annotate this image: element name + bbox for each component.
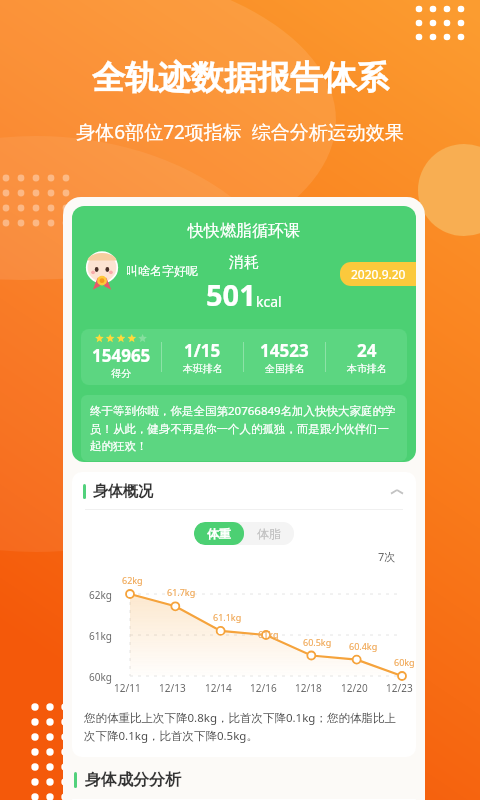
staticText: 12/20 xyxy=(341,681,368,695)
staticText: 61.7kg xyxy=(167,586,196,598)
staticText: 154965 xyxy=(92,344,151,367)
staticText: 60kg xyxy=(89,670,112,684)
staticText: 7次 xyxy=(378,549,396,564)
staticText: 62kg xyxy=(122,574,143,586)
staticText: 消耗 xyxy=(229,253,259,272)
staticText: 2020.9.20 xyxy=(351,266,406,282)
staticText: 12/16 xyxy=(250,681,277,695)
button[interactable]: 2020.9.20 xyxy=(72,206,416,462)
staticText: 61kg xyxy=(258,628,279,640)
staticText: 60.4kg xyxy=(349,640,378,652)
staticText: 60kg xyxy=(394,656,415,668)
staticText: 终于等到你啦，你是全国第20766849名加入快快大家庭的学员！从此，健身不再是… xyxy=(90,403,398,453)
staticText: 60.5kg xyxy=(303,636,332,648)
staticText: 体重 xyxy=(207,526,231,541)
staticText: 12/13 xyxy=(159,681,186,695)
button[interactable]: 身体概况 xyxy=(83,482,405,501)
staticText: 快快燃脂循环课 xyxy=(72,221,416,241)
staticText: kcal xyxy=(256,292,282,311)
staticText: 叫啥名字好呢 xyxy=(126,263,198,278)
staticText: 12/11 xyxy=(114,681,141,695)
staticText: 全国排名 xyxy=(265,362,305,375)
staticText: 全轨迹数据报告体系 xyxy=(92,57,389,99)
other: Collapse xyxy=(389,484,405,500)
staticText: 身体成分分析 xyxy=(85,770,181,790)
staticText: 体脂 xyxy=(257,526,281,541)
staticText: 12/14 xyxy=(205,681,232,695)
staticText: 14523 xyxy=(260,339,309,362)
staticText: 61kg xyxy=(89,629,112,643)
staticText: 501 xyxy=(206,275,256,314)
staticText: 本班排名 xyxy=(183,362,223,375)
staticText: 61.1kg xyxy=(213,611,242,623)
staticText: 12/23 xyxy=(386,681,413,695)
staticText: 62kg xyxy=(89,588,112,602)
button[interactable]: 体脂 xyxy=(257,526,281,541)
button[interactable]: 2020.9.20 xyxy=(351,266,406,282)
staticText: 本市排名 xyxy=(347,362,387,375)
staticText: 1/15 xyxy=(184,339,221,362)
staticText: 24 xyxy=(357,339,377,362)
staticText: 您的体重比上次下降0.8kg，比首次下降0.1kg；您的体脂比上次下降0.1kg… xyxy=(84,710,404,744)
staticText: 身体概况 xyxy=(93,482,153,501)
staticText: 身体6部位72项指标 综合分析运动效果 xyxy=(76,119,404,145)
staticText: 12/18 xyxy=(295,681,322,695)
button[interactable]: 体重 xyxy=(207,526,231,541)
staticText: 得分 xyxy=(111,367,131,380)
